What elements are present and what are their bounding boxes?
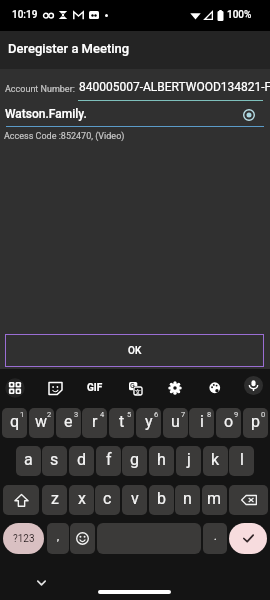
button[interactable]: Stickers: [46, 379, 64, 397]
button[interactable]: Space: [97, 523, 201, 554]
button[interactable]: Theme: [206, 379, 224, 397]
staticText: 10:19: [12, 9, 38, 21]
button[interactable]: c: [95, 485, 120, 515]
staticText: 7: [181, 410, 186, 419]
staticText: ,: [57, 531, 59, 543]
staticText: e: [64, 412, 73, 431]
button[interactable]: g: [122, 446, 147, 476]
button[interactable]: Watson.Family.: [0, 104, 270, 127]
button[interactable]: x: [69, 485, 94, 515]
staticText: s: [50, 450, 59, 469]
staticText: v: [131, 489, 139, 508]
button[interactable]: GIF: [86, 379, 104, 397]
staticText: Watson.Family.: [5, 107, 87, 121]
staticText: h: [157, 450, 166, 469]
staticText: 文: [135, 388, 141, 396]
staticText: .: [214, 531, 217, 543]
staticText: g: [130, 450, 139, 469]
staticText: c: [103, 489, 112, 508]
button[interactable]: Settings: [166, 379, 184, 397]
button[interactable]: v: [122, 485, 147, 515]
staticText: 2: [47, 410, 52, 419]
staticText: 8: [207, 410, 212, 419]
staticText: l: [240, 450, 244, 469]
button[interactable]: Hide keyboard: [33, 575, 49, 591]
button[interactable]: m: [202, 485, 227, 515]
staticText: d: [77, 450, 87, 469]
staticText: ?123: [13, 533, 35, 545]
button[interactable]: Apps: [6, 379, 24, 397]
staticText: m: [207, 489, 222, 508]
staticText: 100%: [227, 9, 252, 21]
staticText: r: [92, 412, 98, 431]
button[interactable]: Translate: [126, 379, 144, 397]
button[interactable]: z: [42, 485, 67, 515]
staticText: a: [24, 450, 33, 469]
button[interactable]: .: [203, 523, 227, 554]
staticText: q: [10, 412, 20, 431]
staticText: p: [251, 412, 260, 431]
button[interactable]: w: [29, 408, 54, 438]
staticText: b: [157, 489, 166, 508]
button[interactable]: s: [42, 446, 67, 476]
staticText: z: [51, 489, 59, 508]
staticText: x: [78, 489, 86, 508]
staticText: 840005007-ALBERTWOOD134821-F: [79, 80, 270, 94]
staticText: 5: [127, 410, 132, 419]
staticText: 9: [234, 410, 239, 419]
staticText: GIF: [87, 382, 103, 394]
button[interactable]: a: [16, 446, 41, 476]
button[interactable]: Enter: [229, 523, 267, 554]
staticText: 3: [74, 410, 79, 419]
button[interactable]: Voice input: [244, 376, 263, 395]
staticText: n: [183, 489, 192, 508]
staticText: Access Code :852470, (Video): [4, 131, 125, 142]
button[interactable]: p: [243, 408, 268, 438]
button[interactable]: f: [96, 446, 121, 476]
staticText: u: [171, 412, 180, 431]
staticText: i: [200, 412, 204, 431]
button[interactable]: u: [163, 408, 188, 438]
button[interactable]: Backspace: [229, 485, 268, 515]
button[interactable]: o: [216, 408, 241, 438]
staticText: 4: [100, 410, 105, 419]
button[interactable]: y: [136, 408, 161, 438]
button[interactable]: i: [189, 408, 214, 438]
staticText: 6: [154, 410, 159, 419]
button[interactable]: ,: [47, 523, 69, 554]
button[interactable]: e: [56, 408, 81, 438]
button[interactable]: r: [82, 408, 107, 438]
staticText: w: [35, 412, 48, 431]
button[interactable]: j: [176, 446, 201, 476]
button[interactable]: l: [229, 446, 254, 476]
staticText: Deregister a Meeting: [8, 41, 130, 56]
button[interactable]: h: [149, 446, 174, 476]
button[interactable]: ?123: [3, 523, 44, 554]
staticText: G: [130, 382, 135, 390]
button[interactable]: Shift: [3, 485, 39, 515]
staticText: k: [211, 450, 220, 469]
button[interactable]: k: [203, 446, 228, 476]
staticText: y: [145, 412, 153, 431]
button[interactable]: d: [69, 446, 94, 476]
button[interactable]: b: [149, 485, 174, 515]
staticText: j: [187, 450, 191, 469]
staticText: 0: [261, 410, 266, 419]
staticText: OK: [128, 345, 142, 357]
button[interactable]: q: [2, 408, 27, 438]
button[interactable]: t: [109, 408, 134, 438]
staticText: t: [119, 412, 125, 431]
button[interactable]: Emoji: [70, 523, 95, 554]
staticText: f: [106, 450, 112, 469]
staticText: 1: [20, 410, 25, 419]
button[interactable]: OK: [5, 334, 264, 367]
staticText: Account Number:: [5, 84, 75, 95]
button[interactable]: n: [175, 485, 200, 515]
staticText: o: [224, 412, 234, 431]
